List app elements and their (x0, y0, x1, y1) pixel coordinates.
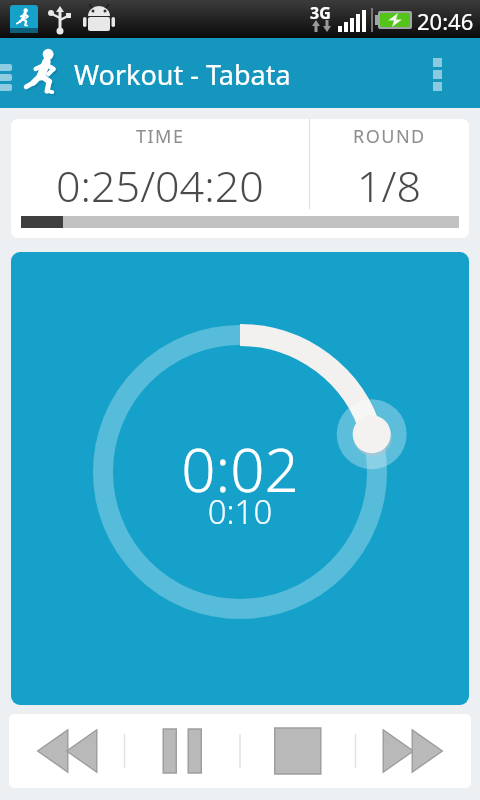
staticText: 3G (310, 2, 331, 24)
staticText: ROUND (353, 124, 426, 149)
staticText: 0:02 (11, 428, 469, 510)
staticText: 0:10 (11, 489, 469, 534)
staticText: 0:25/04:20 (56, 156, 264, 209)
staticText: 1/8 (357, 156, 422, 209)
staticText: 20:46 (417, 6, 474, 36)
staticText: Workout - Tabata (74, 56, 291, 93)
staticText: TIME (136, 124, 185, 149)
